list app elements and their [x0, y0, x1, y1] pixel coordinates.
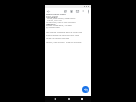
button[interactable]: Back [51, 96, 58, 102]
staticText: Please review the attached docs soon [46, 34, 80, 37]
staticText: so we can finalize the plan [46, 37, 70, 40]
staticText: The release candidate build is ready now [46, 31, 83, 34]
button[interactable]: Home [65, 96, 72, 102]
button[interactable]: Mark unread [74, 8, 80, 14]
button[interactable]: Recents [78, 96, 85, 102]
button[interactable]: Reply [82, 86, 89, 93]
staticText: Weekly status report [46, 13, 66, 16]
button[interactable]: Delete [68, 8, 74, 14]
button[interactable]: Back [45, 8, 51, 14]
staticText: Hi everyone, here is the summary [46, 21, 76, 24]
staticText: Inbox Starred [46, 15, 58, 17]
staticText: Alex Morgan [46, 16, 58, 19]
button[interactable]: Archive [62, 8, 68, 14]
staticText: to me, team-project, design-leads [47, 17, 76, 19]
staticText: Thanks, Alex Morgan Product Manager [46, 41, 82, 44]
staticText: Design review done, API next [46, 24, 72, 27]
staticText: Aug 29, 10:42 AM [47, 19, 62, 21]
button[interactable]: More options [86, 8, 91, 14]
staticText: QA testing next [46, 26, 60, 29]
button[interactable]: Move to [80, 8, 86, 14]
staticText: Highlights [46, 23, 56, 26]
